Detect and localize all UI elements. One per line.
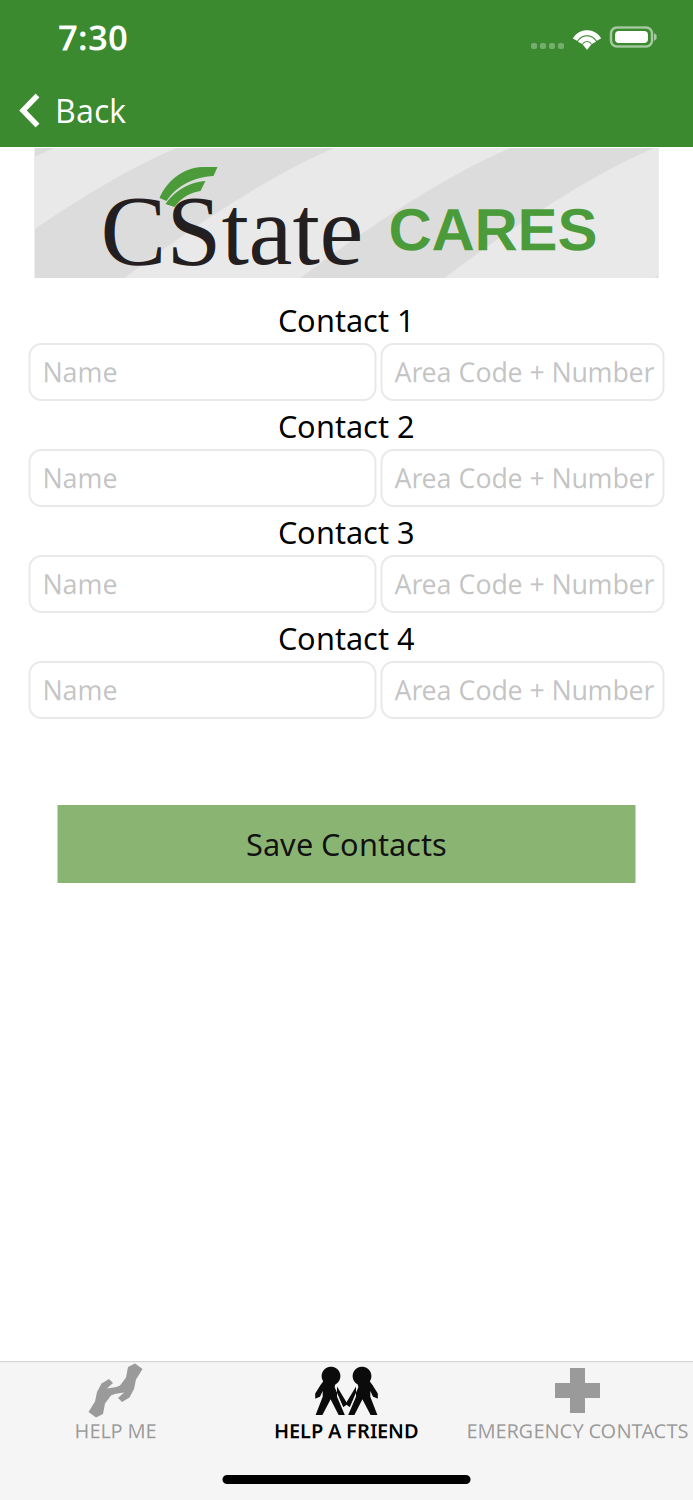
staticText: CState bbox=[100, 176, 363, 285]
staticText: CARES bbox=[388, 196, 597, 263]
staticText: Name bbox=[42, 672, 117, 708]
staticText: Area Code + Number bbox=[394, 354, 654, 390]
staticText: Back bbox=[55, 89, 126, 132]
staticText: 7:30 bbox=[58, 14, 128, 60]
staticText: Name bbox=[42, 460, 117, 496]
staticText: Area Code + Number bbox=[394, 460, 654, 496]
staticText: Contact 3 bbox=[278, 512, 415, 552]
staticText: Contact 2 bbox=[278, 406, 415, 446]
button[interactable]: Save Contacts bbox=[57, 805, 635, 883]
staticText: EMERGENCY CONTACTS bbox=[466, 1417, 688, 1444]
staticText: Area Code + Number bbox=[394, 566, 654, 602]
staticText: Save Contacts bbox=[246, 824, 447, 864]
staticText: HELP A FRIEND bbox=[274, 1417, 419, 1444]
staticText: Contact 4 bbox=[278, 618, 415, 658]
button[interactable]: HELP ME bbox=[0, 1362, 231, 1458]
staticText: Name bbox=[42, 354, 117, 390]
button[interactable]: EMERGENCY CONTACTS bbox=[462, 1362, 693, 1458]
button[interactable]: Back bbox=[0, 74, 144, 147]
staticText: HELP ME bbox=[74, 1417, 156, 1444]
button[interactable]: HELP A FRIEND bbox=[231, 1362, 462, 1458]
staticText: Name bbox=[42, 566, 117, 602]
staticText: Area Code + Number bbox=[394, 672, 654, 708]
staticText: Contact 1 bbox=[278, 300, 415, 340]
